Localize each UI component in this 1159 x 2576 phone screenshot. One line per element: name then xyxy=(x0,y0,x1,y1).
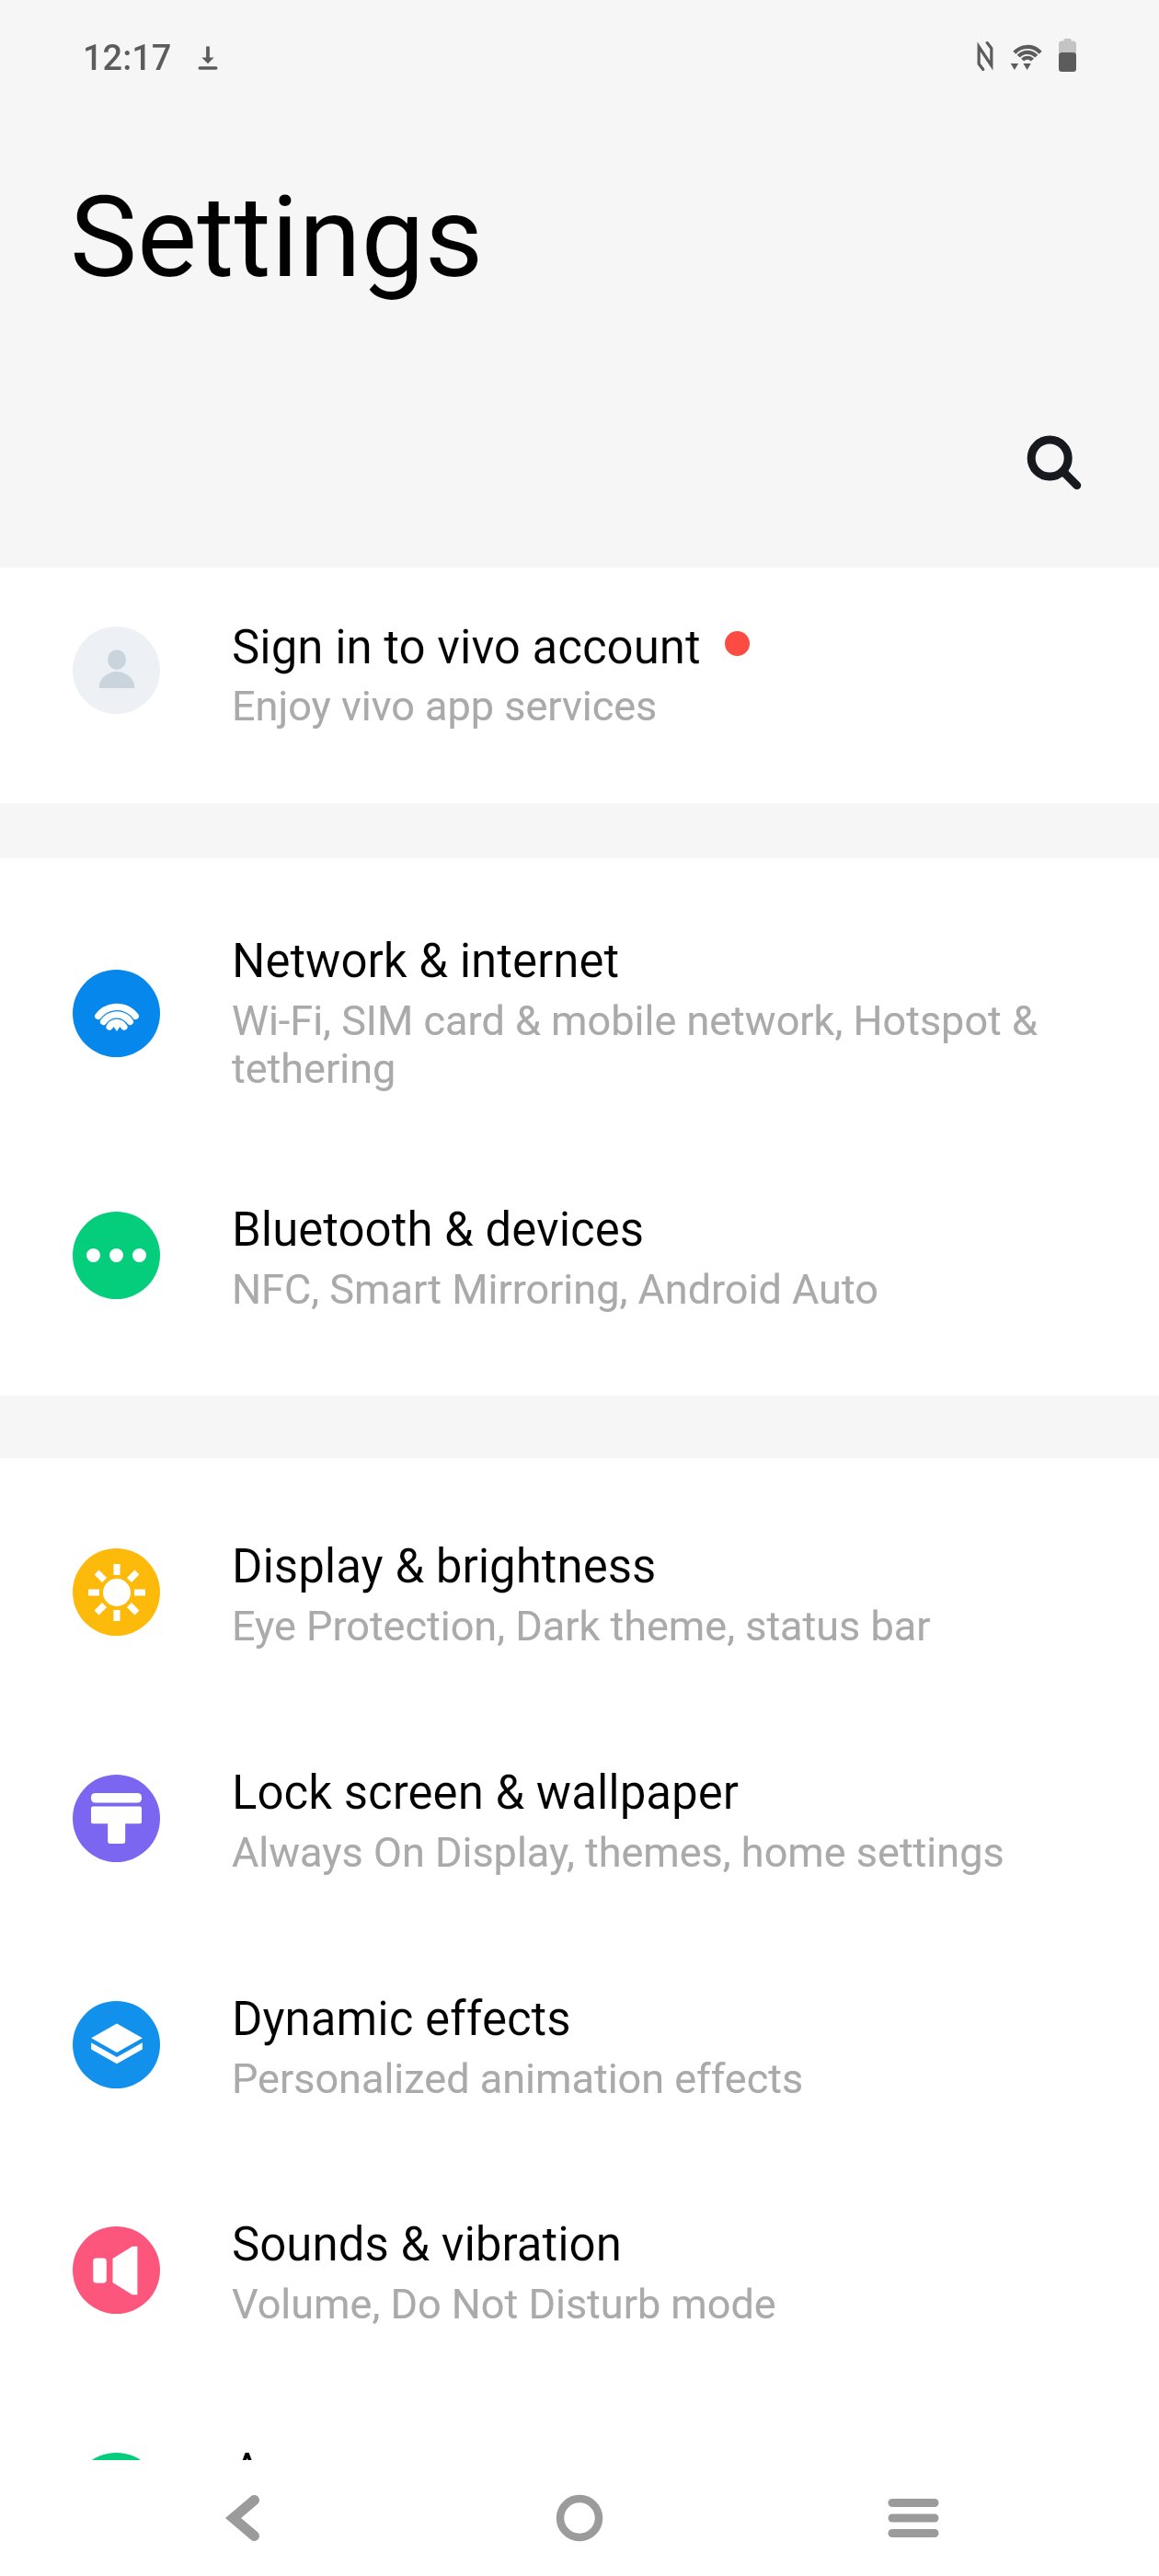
button[interactable]: Home xyxy=(506,2460,653,2576)
staticText: NFC, Smart Mirroring, Android Auto xyxy=(232,1265,878,1314)
staticText: Always On Display, themes, home settings xyxy=(232,1828,1004,1877)
staticText: Sounds & vibration xyxy=(232,2217,622,2272)
staticText: Wi-Fi, SIM card & mobile network, Hotspo… xyxy=(232,996,1038,1093)
button[interactable]: Display & brightness xyxy=(0,1495,1159,1674)
button[interactable]: Bluetooth & devices xyxy=(0,1158,1159,1338)
staticText: Eye Protection, Dark theme, status bar xyxy=(232,1602,931,1650)
button[interactable]: Dynamic effects xyxy=(0,1948,1159,2127)
button[interactable]: Network & internet xyxy=(0,890,1159,1117)
button[interactable]: Apps xyxy=(0,2399,1159,2576)
staticText: Bluetooth & devices xyxy=(232,1202,645,1258)
staticText: Enjoy vivo app services xyxy=(232,682,658,730)
staticText: Personalized animation effects xyxy=(232,2054,804,2103)
staticText: Volume, Do Not Disturb mode xyxy=(232,2280,776,2329)
button[interactable]: Sounds & vibration xyxy=(0,2173,1159,2352)
button[interactable]: Lock screen & wallpaper xyxy=(0,1721,1159,1901)
button[interactable]: Recent apps xyxy=(840,2460,987,2576)
button[interactable]: Sign in to vivo account xyxy=(0,568,1159,803)
button[interactable]: Back xyxy=(170,2460,317,2576)
staticText: Lock screen & wallpaper xyxy=(232,1765,740,1821)
staticText: Sign in to vivo account xyxy=(232,620,701,675)
staticText: Settings xyxy=(70,171,484,304)
staticText: Apps xyxy=(232,2444,339,2499)
staticText: Display & brightness xyxy=(232,1539,657,1594)
staticText: Dynamic effects xyxy=(232,1992,571,2047)
staticText: 12:17 xyxy=(83,38,172,79)
staticText: Network & internet xyxy=(232,934,620,989)
button[interactable]: Search xyxy=(1009,419,1101,511)
